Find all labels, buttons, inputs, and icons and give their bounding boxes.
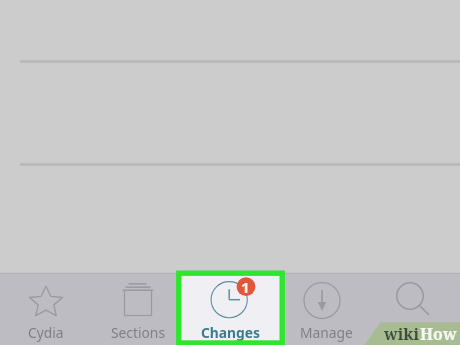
staticText: Manage	[300, 323, 353, 342]
staticText: wiki	[384, 323, 420, 345]
button[interactable]: Cydia	[0, 273, 92, 345]
other: Search	[368, 273, 460, 345]
other: Sections	[92, 273, 184, 345]
staticText: Changes	[201, 323, 260, 342]
staticText: 1	[241, 277, 250, 296]
button[interactable]: 1	[184, 273, 276, 345]
button[interactable]: Manage	[276, 273, 368, 345]
other: Manage	[276, 273, 368, 345]
staticText: Search	[392, 323, 436, 342]
button[interactable]: Sections	[92, 273, 184, 345]
other: Cydia	[0, 273, 92, 345]
button[interactable]: Search	[368, 273, 460, 345]
staticText: Cydia	[28, 323, 64, 342]
staticText: How	[420, 323, 457, 345]
staticText: Sections	[111, 323, 166, 342]
